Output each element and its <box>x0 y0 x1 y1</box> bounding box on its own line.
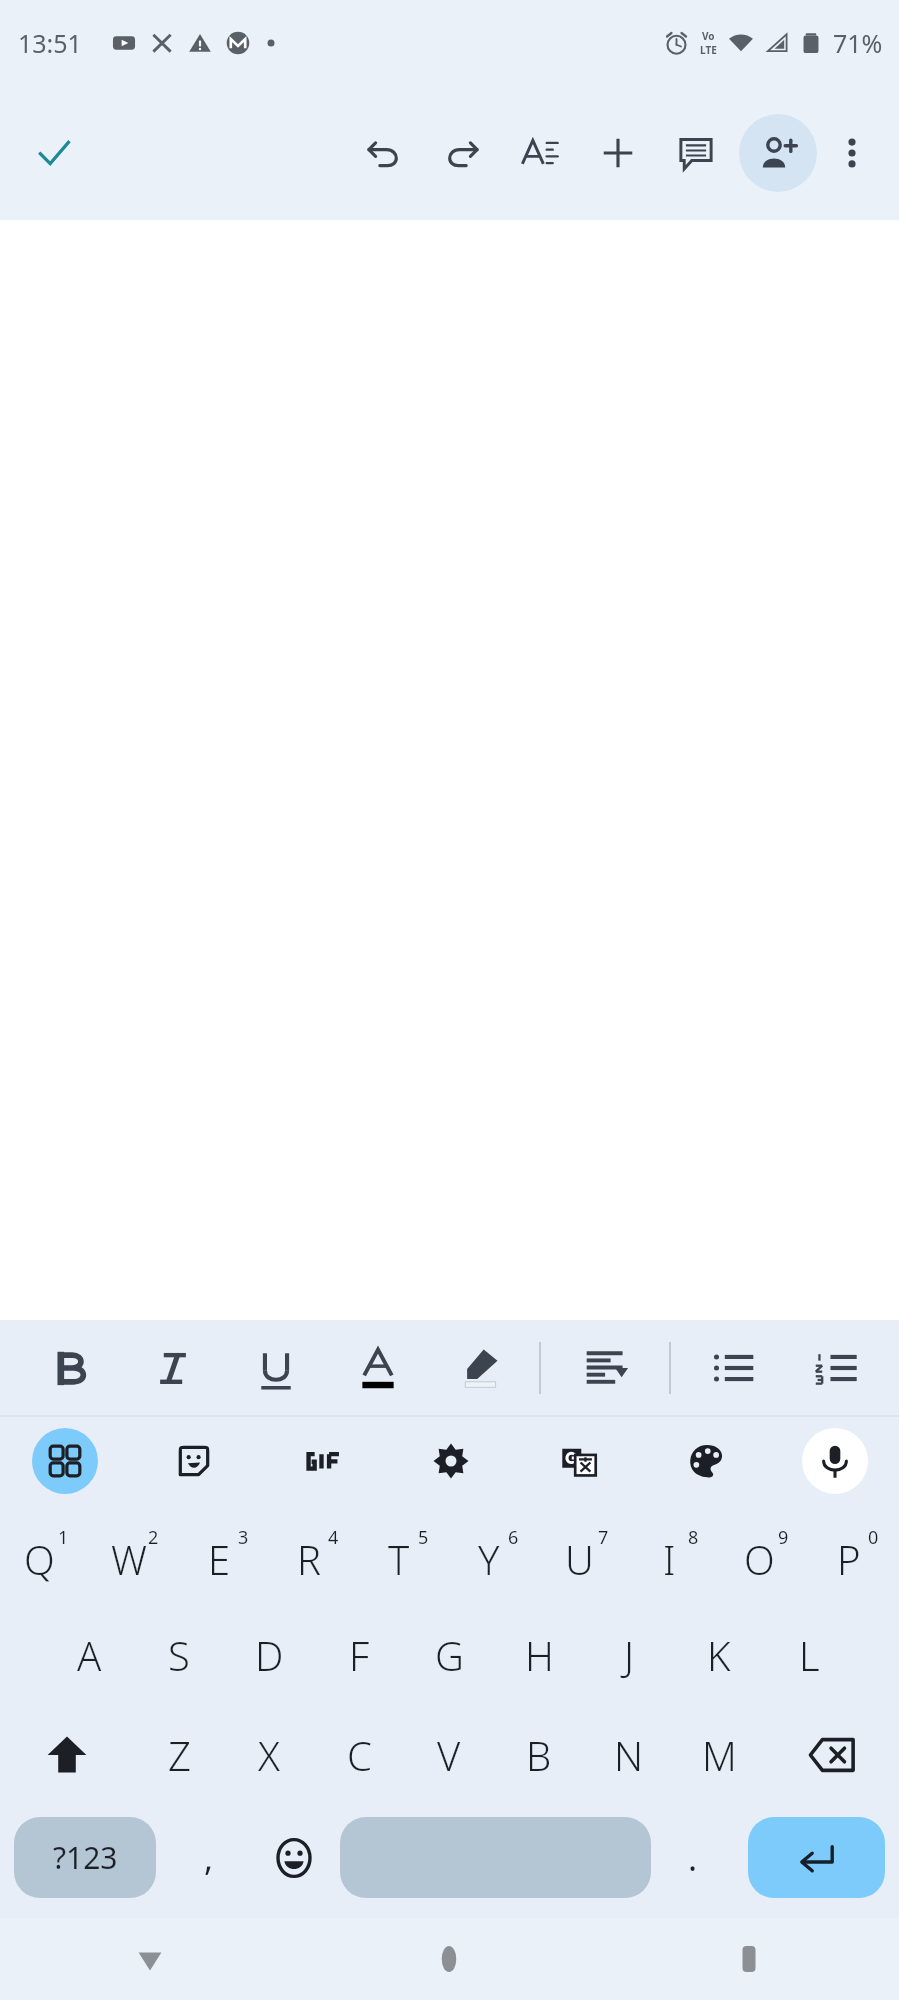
staticText: 2 <box>148 1525 159 1550</box>
staticText: Y <box>478 1532 500 1586</box>
button[interactable]: Text format <box>509 122 571 184</box>
staticText: 3 <box>238 1525 249 1550</box>
button[interactable]: Redo <box>431 122 493 184</box>
staticText: G <box>435 1628 464 1682</box>
button[interactable]: Add <box>587 122 649 184</box>
staticText: L <box>799 1628 820 1682</box>
button[interactable]: L <box>764 1605 854 1705</box>
button[interactable]: Z <box>134 1705 224 1805</box>
button[interactable]: Highlight <box>429 1320 531 1415</box>
button[interactable]: Emoji <box>248 1805 340 1910</box>
button[interactable]: I <box>629 1505 719 1605</box>
staticText: X <box>258 1728 280 1782</box>
button[interactable]: Recents <box>599 1918 899 2000</box>
button[interactable]: H <box>494 1605 584 1705</box>
button[interactable]: B <box>494 1705 584 1805</box>
staticText: D <box>255 1628 284 1682</box>
staticText: R <box>297 1532 321 1586</box>
staticText: , <box>204 1835 214 1881</box>
button[interactable]: Apps <box>0 1417 129 1505</box>
button[interactable]: Comment <box>665 122 727 184</box>
button[interactable]: Backspace <box>764 1705 899 1805</box>
button[interactable]: Space <box>340 1817 651 1898</box>
button[interactable]: Q <box>0 1505 89 1605</box>
staticText: M <box>702 1728 737 1782</box>
button[interactable]: Y <box>449 1505 539 1605</box>
button[interactable]: Text colour <box>327 1320 429 1415</box>
staticText: Z <box>168 1728 191 1782</box>
staticText: 5 <box>418 1525 429 1550</box>
button[interactable]: K <box>674 1605 764 1705</box>
button[interactable]: Bold <box>18 1320 121 1415</box>
staticText: 4 <box>328 1525 339 1550</box>
staticText: U <box>565 1532 594 1586</box>
staticText: E <box>208 1532 231 1586</box>
button[interactable]: S <box>134 1605 224 1705</box>
button[interactable]: Themes <box>643 1417 771 1505</box>
staticText: 6 <box>508 1525 519 1550</box>
staticText: C <box>347 1728 372 1782</box>
button[interactable]: Numbered list <box>785 1320 887 1415</box>
button[interactable]: Done <box>26 125 82 181</box>
button[interactable]: GIF <box>258 1417 387 1505</box>
button[interactable]: R <box>269 1505 359 1605</box>
staticText: H <box>525 1628 554 1682</box>
staticText: . <box>688 1835 698 1881</box>
button[interactable]: Shift <box>0 1705 134 1805</box>
staticText: LTE <box>700 43 717 57</box>
staticText: 1 <box>58 1525 69 1550</box>
button[interactable]: U <box>539 1505 629 1605</box>
button[interactable]: Translate <box>515 1417 643 1505</box>
staticText: K <box>707 1628 731 1682</box>
staticText: I <box>663 1532 676 1586</box>
button[interactable]: Settings <box>387 1417 515 1505</box>
button[interactable]: A <box>44 1605 134 1705</box>
button[interactable]: E <box>179 1505 269 1605</box>
button[interactable]: Undo <box>353 122 415 184</box>
button[interactable]: . <box>651 1805 734 1910</box>
button[interactable]: J <box>584 1605 674 1705</box>
button[interactable]: C <box>314 1705 404 1805</box>
button[interactable]: X <box>224 1705 314 1805</box>
staticText: Q <box>24 1532 55 1586</box>
button[interactable]: Voice input <box>771 1417 899 1505</box>
staticText: 9 <box>778 1525 789 1550</box>
button[interactable]: F <box>314 1605 404 1705</box>
staticText: 71% <box>833 26 883 60</box>
button[interactable]: Enter <box>748 1817 885 1898</box>
button[interactable]: T <box>359 1505 449 1605</box>
button[interactable]: Share <box>739 114 817 192</box>
button[interactable]: Underline <box>224 1320 327 1415</box>
staticText: W <box>111 1532 147 1586</box>
staticText: T <box>388 1532 410 1586</box>
button[interactable]: W <box>89 1505 179 1605</box>
button[interactable]: , <box>170 1805 248 1910</box>
staticText: 8 <box>688 1525 699 1550</box>
staticText: V <box>437 1728 461 1782</box>
staticText: Vo <box>702 29 715 43</box>
staticText: 0 <box>868 1525 879 1550</box>
staticText: 13:51 <box>18 26 82 60</box>
button[interactable]: Stickers <box>129 1417 258 1505</box>
staticText: 7 <box>598 1525 609 1550</box>
button[interactable]: M <box>674 1705 764 1805</box>
button[interactable]: P <box>809 1505 899 1605</box>
button[interactable]: Italic <box>121 1320 224 1415</box>
button[interactable]: D <box>224 1605 314 1705</box>
button[interactable]: More options <box>817 118 887 188</box>
staticText: N <box>614 1728 644 1782</box>
staticText: A <box>77 1628 102 1682</box>
button[interactable]: Alignment <box>555 1320 657 1415</box>
button[interactable]: G <box>404 1605 494 1705</box>
staticText: O <box>744 1532 775 1586</box>
button[interactable]: O <box>719 1505 809 1605</box>
button[interactable]: V <box>404 1705 494 1805</box>
staticText: S <box>168 1628 190 1682</box>
button[interactable]: Home <box>299 1918 599 2000</box>
button[interactable]: N <box>584 1705 674 1805</box>
staticText: P <box>837 1532 861 1586</box>
button[interactable]: ?123 <box>14 1817 156 1898</box>
button[interactable]: Bulleted list <box>683 1320 785 1415</box>
button[interactable]: Back <box>0 1918 299 2000</box>
staticText: B <box>526 1728 552 1782</box>
